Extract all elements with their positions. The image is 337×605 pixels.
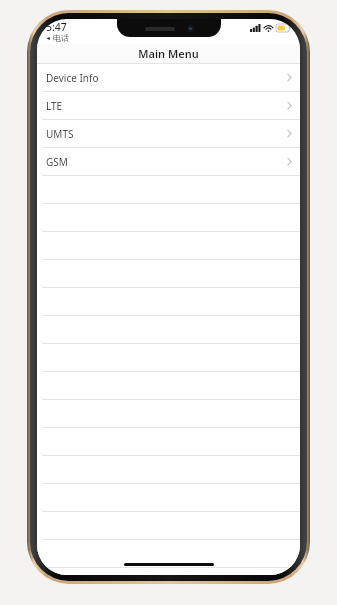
staticText: GSM	[46, 155, 68, 169]
button[interactable]: Device Info	[37, 64, 300, 91]
button[interactable]: LTE	[37, 92, 300, 119]
button[interactable]: GSM	[37, 148, 300, 175]
button[interactable]: UMTS	[37, 120, 300, 147]
staticText: UMTS	[46, 127, 74, 141]
staticText: LTE	[46, 99, 63, 113]
staticText: Main Menu	[138, 46, 199, 61]
staticText: 电话	[53, 33, 69, 43]
staticText: Device Info	[46, 71, 99, 85]
staticText: 5:47	[46, 20, 67, 34]
